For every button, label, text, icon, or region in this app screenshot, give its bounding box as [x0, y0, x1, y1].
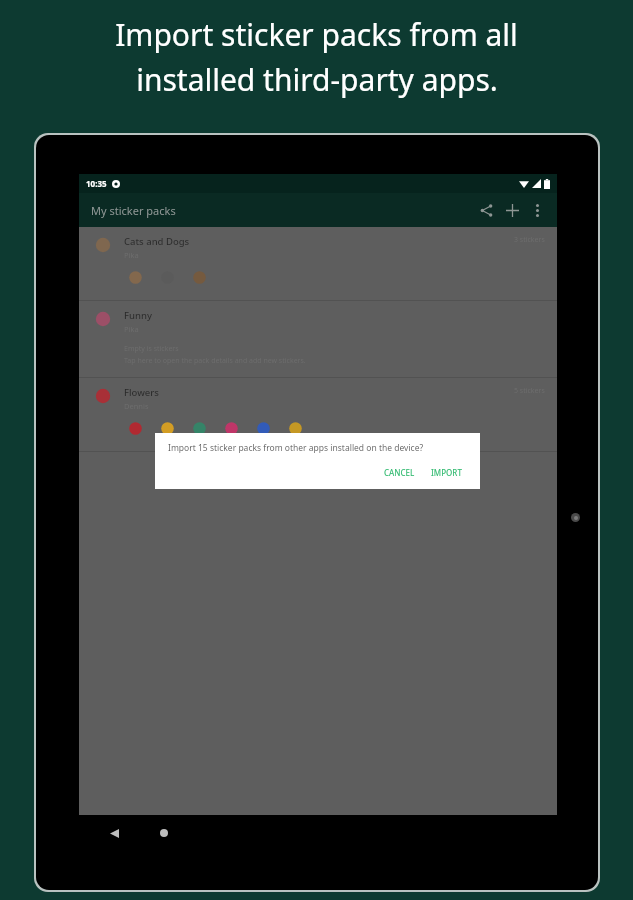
staticText: My sticker packs: [91, 203, 176, 218]
staticText: IMPORT: [431, 467, 462, 478]
button[interactable]: CANCEL: [379, 465, 420, 480]
button[interactable]: More options: [525, 198, 549, 222]
staticText: Funny: [124, 309, 152, 322]
staticText: 5 stickers: [514, 386, 545, 396]
staticText: Import 15 sticker packs from other apps …: [168, 442, 424, 454]
staticText: 3 stickers: [514, 235, 545, 245]
button[interactable]: Cats and Dogs: [79, 227, 557, 300]
staticText: Import sticker packs from all: [115, 14, 518, 55]
staticText: CANCEL: [384, 467, 415, 478]
button[interactable]: Funny: [79, 301, 557, 377]
button[interactable]: IMPORT: [426, 465, 467, 480]
button[interactable]: Share: [473, 197, 499, 223]
button[interactable]: Home: [151, 820, 177, 846]
staticText: Pika: [124, 324, 139, 334]
staticText: 10:35: [86, 178, 107, 189]
button[interactable]: Back: [101, 820, 127, 846]
staticText: Cats and Dogs: [124, 235, 190, 248]
staticText: installed third-party apps.: [136, 59, 498, 100]
button[interactable]: Flowers: [79, 378, 557, 451]
staticText: Pika: [124, 250, 139, 260]
staticText: Flowers: [124, 386, 159, 399]
button[interactable]: Add: [499, 197, 525, 223]
staticText: Dennis: [124, 401, 149, 411]
